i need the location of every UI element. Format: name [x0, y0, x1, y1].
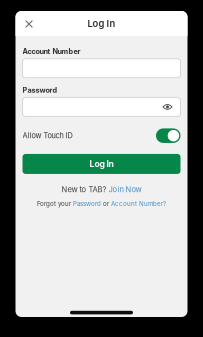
button[interactable]: Join Now [108, 185, 141, 194]
button[interactable]: Account Number? [111, 200, 166, 207]
staticText: Allow Touch ID [22, 131, 72, 140]
staticText: New to TAB? [61, 185, 108, 194]
staticText: Log In [89, 159, 113, 169]
staticText: or [101, 200, 111, 207]
button[interactable]: Password [73, 200, 101, 207]
staticText: Forgot your [37, 200, 73, 207]
staticText: Password [73, 200, 101, 207]
staticText: Join Now [108, 185, 141, 194]
button[interactable]: Show password [162, 103, 180, 111]
staticText: Log In [87, 18, 115, 29]
staticText: Account Number [22, 47, 80, 56]
button[interactable]: Close [19, 10, 39, 37]
staticText: Account Number? [111, 200, 166, 207]
button[interactable]: Log In [22, 154, 180, 174]
button[interactable]: Allow Touch ID [22, 116, 180, 143]
staticText: Password [22, 86, 57, 94]
